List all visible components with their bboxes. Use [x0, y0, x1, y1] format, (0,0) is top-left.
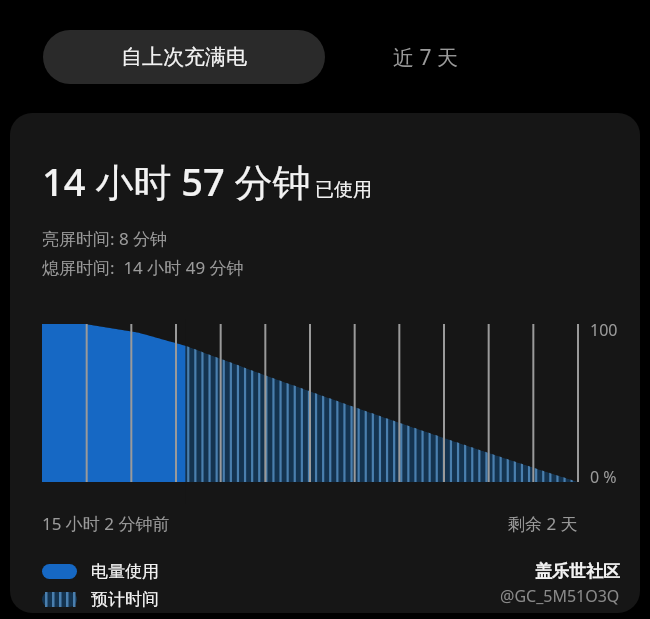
- staticText: 电量使用: [91, 561, 159, 582]
- button[interactable]: 自上次充满电: [43, 30, 325, 84]
- staticText: @GC_5M51O3Q: [500, 585, 620, 607]
- staticText: 0 %: [590, 466, 617, 488]
- staticText: 亮屏时间: 8 分钟: [42, 227, 168, 250]
- button[interactable]: 近 7 天: [325, 30, 525, 84]
- staticText: 盖乐世社区: [535, 561, 620, 582]
- staticText: 已使用: [315, 178, 372, 202]
- staticText: 熄屏时间: 14 小时 49 分钟: [42, 256, 244, 279]
- staticText: 预计时间: [91, 589, 159, 610]
- staticText: 剩余 2 天: [508, 512, 578, 535]
- staticText: 近 7 天: [393, 43, 458, 72]
- staticText: 15 小时 2 分钟前: [42, 512, 170, 535]
- staticText: 100: [590, 319, 618, 341]
- staticText: 自上次充满电: [121, 44, 247, 70]
- staticText: 14 小时 57 分钟: [42, 155, 311, 207]
